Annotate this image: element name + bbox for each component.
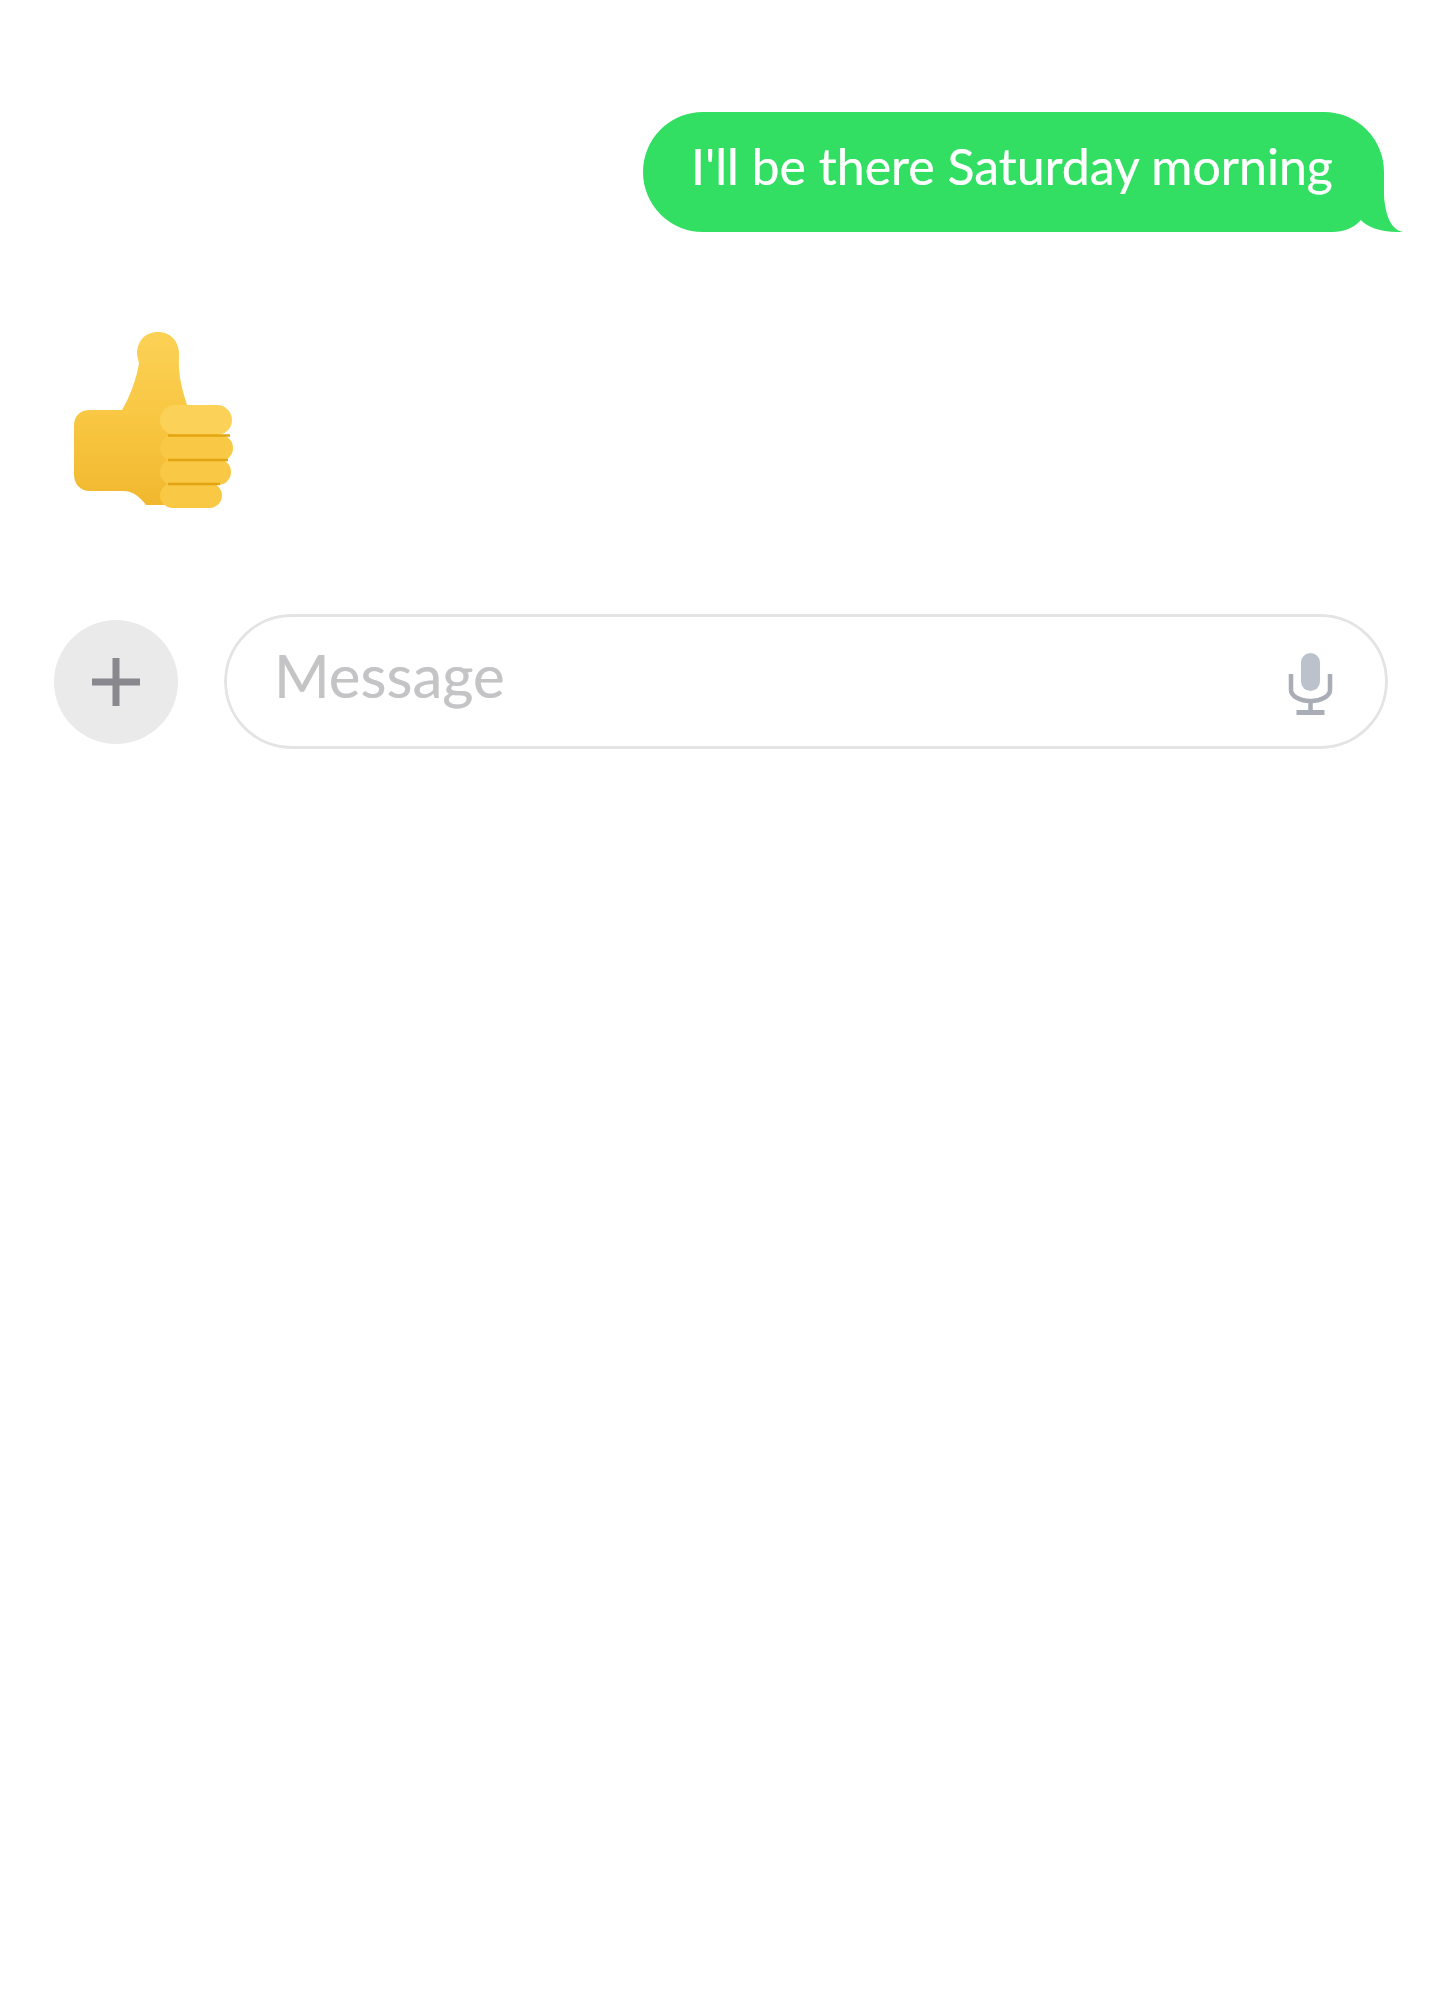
staticText: Message xyxy=(274,639,505,711)
staticText: I'll be there Saturday morning xyxy=(691,136,1333,196)
button[interactable]: Add attachment xyxy=(54,620,178,744)
button[interactable]: Message xyxy=(224,614,1388,749)
button[interactable]: Voice input xyxy=(1276,639,1344,707)
button[interactable]: I'll be there Saturday morning xyxy=(643,112,1403,234)
